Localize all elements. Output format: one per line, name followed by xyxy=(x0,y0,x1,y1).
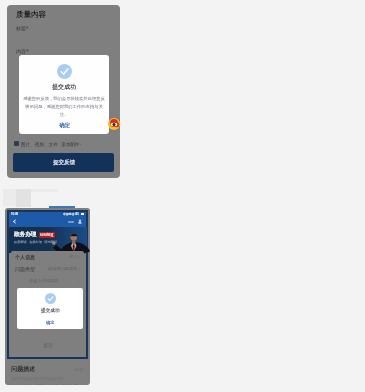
button[interactable]: 问题类型 xyxy=(15,263,80,275)
staticText: 标题* xyxy=(16,25,29,32)
staticText: 特别报道 xyxy=(40,233,54,237)
staticText: 确定 xyxy=(59,122,70,129)
staticText: 感谢您的反馈，我们会尽快核实并处理您反映的问题，感谢您对我们工作的支持与关注。 xyxy=(23,96,105,117)
staticText: 张三 › xyxy=(69,254,80,260)
staticText: 政务办理 xyxy=(14,231,37,238)
staticText: 提交反馈 xyxy=(53,159,75,166)
button[interactable]: 提交反馈 xyxy=(13,153,114,172)
staticText: 提交 xyxy=(43,342,53,348)
button[interactable]: More options xyxy=(67,218,75,226)
button[interactable]: 个人信息 xyxy=(15,251,80,263)
staticText: 提交成功 xyxy=(52,83,76,91)
button[interactable]: Account xyxy=(76,218,84,226)
button[interactable]: 确定 xyxy=(17,315,83,329)
button[interactable]: 请输入详细内容 › xyxy=(15,275,80,286)
staticText: 个人信息 xyxy=(15,254,35,260)
staticText: 中国移动 4G xyxy=(63,212,79,216)
staticText: 10:08 xyxy=(11,212,19,216)
staticText: 内容* xyxy=(16,48,29,55)
staticText: 请详细描述您遇到的问题及场景 xyxy=(11,376,65,381)
button[interactable]: 确定 xyxy=(19,117,109,134)
staticText: 问题描述 xyxy=(11,365,35,373)
staticText: 确定 xyxy=(46,320,55,325)
staticText: 政策解读 在线办理 联系我们 xyxy=(14,240,58,244)
button[interactable]: Share to Weibo xyxy=(108,118,120,130)
staticText: 请选择问题类型 › xyxy=(48,266,80,272)
staticText: 问题类型 xyxy=(15,266,35,272)
button[interactable]: Back xyxy=(11,218,18,225)
staticText: 您的反馈将帮助我们不断改进服务质量和效率 xyxy=(11,384,84,385)
staticText: 提交成功 xyxy=(41,308,60,314)
staticText: 必填 xyxy=(75,367,84,372)
staticText: 质量内容 xyxy=(16,10,46,19)
staticText: 图片、视频、文件 添加附件· xyxy=(21,141,81,147)
staticText: 请输入详细内容 › xyxy=(29,278,80,284)
